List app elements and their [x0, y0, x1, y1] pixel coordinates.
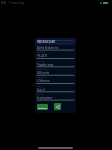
- staticText: Process: [37, 60, 46, 63]
- button[interactable]: Process: [35, 59, 76, 67]
- staticText: SUBMIT: [38, 106, 47, 109]
- staticText: Part no.: [37, 51, 46, 54]
- staticText: Batch size: [37, 68, 48, 71]
- staticText: J. Moreno: [37, 79, 50, 83]
- staticText: Customer: [37, 45, 48, 48]
- staticText: VIDEOCOAT: [37, 40, 56, 44]
- staticText: In progress: [37, 96, 52, 100]
- staticText: PX-4471: [37, 54, 48, 58]
- button[interactable]: Customer: [35, 45, 76, 50]
- button[interactable]: Batch size: [35, 67, 76, 75]
- button[interactable]: Share: [54, 103, 61, 110]
- staticText: 250 units: [37, 71, 50, 75]
- staticText: Status: [37, 93, 44, 96]
- staticText: 9:41: [1, 1, 7, 5]
- button[interactable]: Part no.: [35, 50, 76, 58]
- staticText: Line 3: [37, 88, 45, 92]
- button[interactable]: Status: [35, 92, 76, 100]
- button[interactable]: Line: [35, 84, 76, 92]
- staticText: 12 Apr 2024 09:41: [55, 42, 74, 45]
- staticText: PROCESS REPORT: [55, 39, 74, 42]
- staticText: Powder coat: [37, 63, 54, 67]
- button[interactable]: Operator: [35, 75, 76, 83]
- button[interactable]: SUBMIT: [37, 104, 48, 110]
- staticText: Acme Industries: [37, 46, 59, 50]
- staticText: Process log: [9, 1, 24, 5]
- staticText: Operator: [37, 76, 47, 79]
- staticText: Line: [37, 85, 42, 88]
